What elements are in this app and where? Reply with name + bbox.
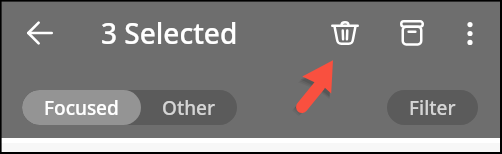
button[interactable]: Back bbox=[17, 10, 63, 56]
staticText: Other bbox=[162, 95, 216, 121]
button[interactable]: Other bbox=[141, 90, 237, 125]
button[interactable]: Filter bbox=[387, 90, 478, 125]
button[interactable]: Delete bbox=[322, 10, 368, 56]
button[interactable]: More options bbox=[447, 10, 493, 56]
button[interactable]: Focused bbox=[22, 90, 141, 125]
staticText: Focused bbox=[44, 95, 119, 121]
staticText: Filter bbox=[409, 95, 456, 121]
button[interactable]: 3 Selected bbox=[101, 14, 238, 52]
button[interactable]: Archive bbox=[389, 9, 435, 55]
